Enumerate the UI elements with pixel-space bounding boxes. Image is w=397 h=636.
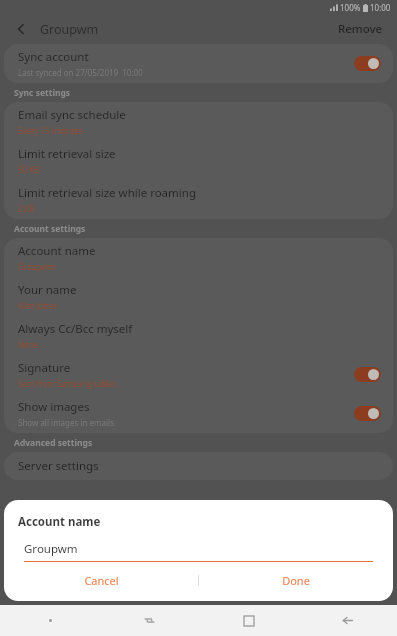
staticText: Account name	[18, 514, 101, 530]
staticText: Account settings	[14, 223, 86, 235]
button[interactable]: Limit retrieval size while roaming	[4, 180, 393, 219]
button[interactable]: Done	[199, 565, 393, 595]
staticText: 100%	[340, 2, 361, 13]
staticText: Last synced on 27/05/2019 10:00	[18, 67, 143, 78]
button[interactable]: Hide keyboard	[0, 605, 100, 636]
staticText: Limit retrieval size while roaming	[18, 185, 196, 201]
staticText: Your name	[18, 282, 77, 298]
staticText: Show all images in emails.	[18, 417, 117, 428]
button[interactable]: Account name	[4, 238, 393, 277]
button[interactable]: Switch input method	[100, 605, 199, 636]
button[interactable]: Always Cc/Bcc myself	[4, 316, 393, 355]
staticText: Groupwm	[24, 541, 78, 557]
button[interactable]: Your name	[4, 277, 393, 316]
staticText: Every 15 minutes	[18, 125, 83, 136]
staticText: Sent from Samsung tablet.	[18, 378, 119, 389]
staticText: Alan Jones	[18, 300, 57, 311]
button[interactable]: Toggle Sync account	[354, 56, 381, 71]
button[interactable]: Groupwm	[24, 541, 373, 562]
staticText: Signature	[18, 360, 71, 376]
button[interactable]: Server settings	[4, 452, 393, 480]
button[interactable]: Remove	[334, 16, 387, 42]
staticText: Groupwm	[40, 21, 99, 38]
staticText: Limit retrieval size	[18, 146, 116, 162]
button[interactable]: Toggle Signature	[354, 367, 381, 382]
staticText: Cancel	[84, 573, 119, 588]
staticText: Groupwm	[18, 261, 56, 272]
staticText: Done	[282, 573, 310, 588]
button[interactable]: Email sync schedule	[4, 102, 393, 141]
staticText: Show images	[18, 399, 90, 415]
staticText: 2 KB	[18, 203, 35, 214]
button[interactable]: Cancel	[4, 565, 198, 595]
staticText: Always Cc/Bcc myself	[18, 321, 133, 337]
staticText: Advanced settings	[14, 437, 93, 449]
button[interactable]: Signature	[4, 355, 393, 394]
staticText: 10:00	[370, 2, 391, 13]
staticText: 50 KB	[18, 164, 40, 175]
button[interactable]: Toggle Show images	[354, 406, 381, 421]
button[interactable]: Back	[298, 605, 397, 636]
button[interactable]: Limit retrieval size	[4, 141, 393, 180]
staticText: Server settings	[18, 458, 99, 474]
button[interactable]: Show images	[4, 394, 393, 433]
staticText: Email sync schedule	[18, 107, 126, 123]
button[interactable]: Recent apps	[199, 605, 298, 636]
staticText: None	[18, 339, 39, 350]
staticText: Account name	[18, 243, 96, 259]
staticText: Sync settings	[14, 87, 71, 99]
staticText: Remove	[338, 21, 383, 37]
button[interactable]: Back	[10, 18, 32, 40]
staticText: Sync account	[18, 49, 89, 65]
button[interactable]: Sync account	[4, 44, 393, 83]
